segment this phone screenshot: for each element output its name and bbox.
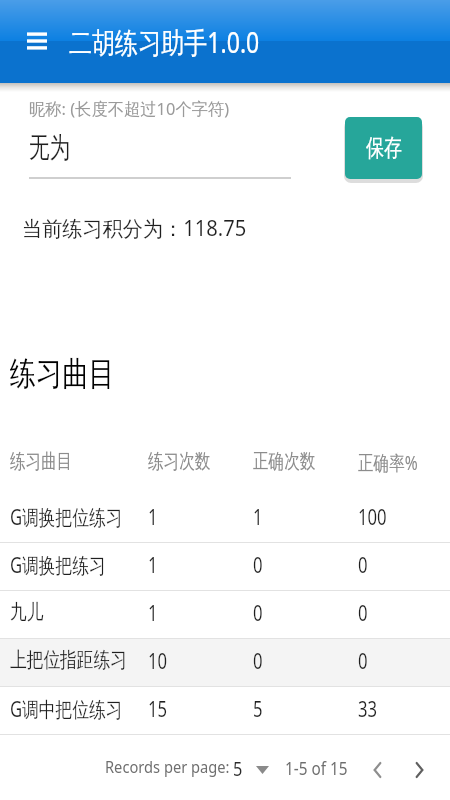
- staticText: 昵称: (长度不超过10个字符): [29, 97, 229, 120]
- staticText: 无为: [29, 130, 70, 165]
- staticText: 二胡练习助手1.0.0: [69, 22, 260, 62]
- staticText: 1: [253, 503, 263, 532]
- staticText: 正确率%: [358, 449, 418, 476]
- staticText: 1: [148, 503, 158, 532]
- staticText: 练习次数: [148, 449, 210, 474]
- staticText: 5: [233, 755, 243, 782]
- staticText: 0: [253, 647, 263, 676]
- staticText: 1: [148, 599, 158, 628]
- button[interactable]: [96, 748, 236, 788]
- staticText: 0: [358, 551, 368, 580]
- staticText: 0: [253, 551, 263, 580]
- staticText: 100: [358, 503, 387, 532]
- staticText: 练习曲目: [10, 449, 72, 474]
- staticText: G调中把位练习: [10, 695, 123, 724]
- staticText: 10: [148, 647, 168, 676]
- staticText: 0: [253, 599, 263, 628]
- button[interactable]: G调换把练习: [0, 542, 450, 590]
- button[interactable]: 九儿: [0, 590, 450, 638]
- button[interactable]: 上把位指距练习: [0, 638, 450, 686]
- button[interactable]: G调中把位练习: [0, 686, 450, 734]
- button[interactable]: 保存: [345, 117, 422, 179]
- button[interactable]: Open navigation menu: [19, 23, 55, 59]
- staticText: 0: [358, 599, 368, 628]
- staticText: 正确次数: [253, 449, 315, 474]
- button[interactable]: Next page: [401, 750, 437, 790]
- staticText: 0: [358, 647, 368, 676]
- staticText: 保存: [366, 133, 402, 163]
- staticText: G调换把位练习: [10, 503, 123, 532]
- staticText: 1-5 of 15: [285, 756, 348, 781]
- staticText: G调换把练习: [10, 551, 106, 580]
- staticText: 1: [148, 551, 158, 580]
- button[interactable]: G调换把位练习: [0, 494, 450, 542]
- staticText: 练习曲目: [10, 353, 114, 395]
- staticText: 上把位指距练习: [10, 647, 127, 673]
- staticText: 15: [148, 695, 168, 724]
- staticText: 九儿: [10, 599, 43, 625]
- staticText: 当前练习积分为：118.75: [22, 214, 247, 243]
- staticText: Records per page:: [105, 755, 230, 778]
- staticText: 5: [253, 695, 263, 724]
- staticText: 33: [358, 695, 378, 724]
- button[interactable]: Previous page: [359, 750, 395, 790]
- button[interactable]: Rows per page: 5: [229, 748, 279, 788]
